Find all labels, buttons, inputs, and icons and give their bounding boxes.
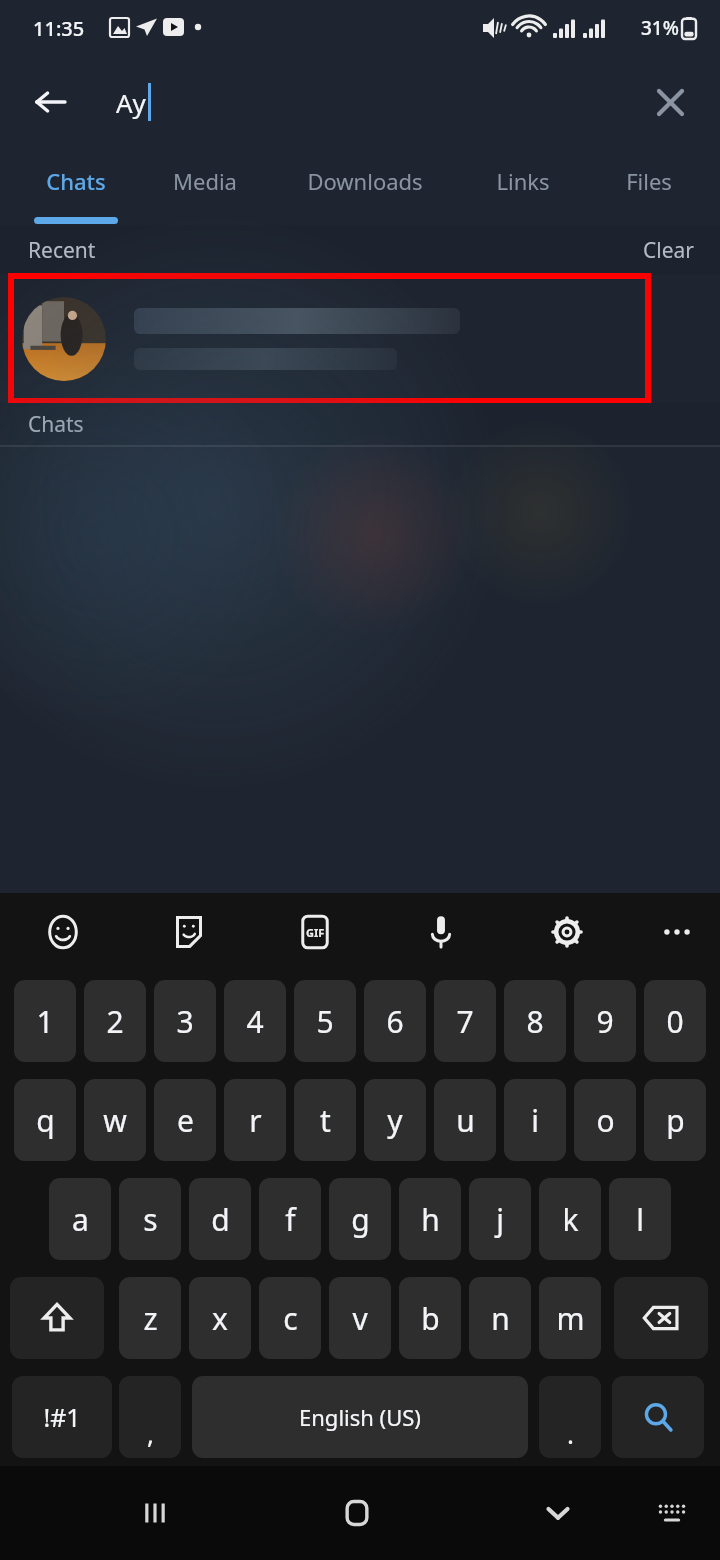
button[interactable]: Hide keyboard [520,1475,596,1551]
button[interactable] [0,275,720,403]
button[interactable]: 3 [154,980,216,1062]
button[interactable]: m [539,1277,601,1359]
staticText: Chats [46,166,106,196]
button[interactable]: z [119,1277,181,1359]
button[interactable]: 1 [14,980,76,1062]
button[interactable]: p [644,1079,706,1161]
button[interactable]: 7 [434,980,496,1062]
staticText: 7 [456,1001,474,1042]
button[interactable]: Settings [533,898,601,966]
button[interactable]: u [434,1079,496,1161]
staticText: b [421,1298,440,1339]
staticText: k [562,1199,579,1240]
button[interactable]: y [364,1079,426,1161]
staticText: Chats [28,410,84,439]
staticText: 1 [36,1001,54,1042]
button[interactable]: Switch keyboard [634,1475,710,1551]
button[interactable]: GIF [281,898,349,966]
staticText: 31% [641,15,679,41]
staticText: Media [173,166,237,196]
staticText: v [352,1298,368,1339]
button[interactable]: Chats [6,148,146,225]
staticText: e [177,1100,194,1141]
staticText: f [285,1199,296,1240]
button[interactable]: Links [453,148,593,225]
button[interactable]: r [224,1079,286,1161]
button[interactable]: Emoji [29,898,97,966]
button[interactable]: Home [319,1475,395,1551]
button[interactable]: 2 [84,980,146,1062]
button[interactable]: n [469,1277,531,1359]
staticText: 2 [106,1001,124,1042]
staticText: d [211,1199,230,1240]
button[interactable]: Back [20,72,80,132]
button[interactable]: 0 [644,980,706,1062]
button[interactable]: . [539,1376,601,1458]
button[interactable]: k [539,1178,601,1260]
button[interactable]: t [294,1079,356,1161]
staticText: r [249,1100,262,1141]
staticText: Recent [28,236,96,265]
button[interactable]: 6 [364,980,426,1062]
staticText: . [567,1416,574,1451]
staticText: y [387,1100,403,1141]
staticText: 5 [316,1001,334,1042]
button[interactable]: f [259,1178,321,1260]
staticText: 11:35 [33,15,85,42]
button[interactable]: g [329,1178,391,1260]
button[interactable]: e [154,1079,216,1161]
staticText: x [212,1298,228,1339]
button[interactable]: j [469,1178,531,1260]
button[interactable]: Backspace [614,1277,708,1359]
staticText: Downloads [307,166,423,196]
button[interactable]: 4 [224,980,286,1062]
staticText: !#1 [43,1400,81,1434]
button[interactable]: 9 [574,980,636,1062]
staticText: Ay [116,85,146,120]
button[interactable]: Files [579,148,719,225]
staticText: 8 [526,1001,544,1042]
staticText: 9 [596,1001,614,1042]
button[interactable]: Downloads [270,148,460,225]
button[interactable]: More options [643,898,711,966]
button[interactable]: Search [612,1376,704,1458]
button[interactable]: Clear [643,236,694,265]
staticText: n [491,1298,510,1339]
button[interactable]: w [84,1079,146,1161]
staticText: 6 [386,1001,404,1042]
button[interactable]: Shift [10,1277,104,1359]
button[interactable]: 5 [294,980,356,1062]
button[interactable]: English (US) [192,1376,528,1458]
staticText: 3 [176,1001,194,1042]
staticText: s [143,1199,158,1240]
button[interactable]: Stickers [155,898,223,966]
staticText: Files [626,166,672,196]
staticText: , [147,1416,154,1451]
button[interactable]: Recents [117,1475,193,1551]
staticText: t [320,1100,331,1141]
button[interactable]: h [399,1178,461,1260]
button[interactable]: s [119,1178,181,1260]
button[interactable]: i [504,1079,566,1161]
staticText: 0 [666,1001,684,1042]
button[interactable]: Clear search [640,72,700,132]
button[interactable]: Media [135,148,275,225]
staticText: a [72,1199,89,1240]
button[interactable]: l [609,1178,671,1260]
button[interactable]: c [259,1277,321,1359]
staticText: u [456,1100,475,1141]
button[interactable]: q [14,1079,76,1161]
button[interactable]: x [189,1277,251,1359]
staticText: j [496,1199,504,1240]
button[interactable]: v [329,1277,391,1359]
button[interactable]: d [189,1178,251,1260]
button[interactable]: , [119,1376,181,1458]
button[interactable]: o [574,1079,636,1161]
staticText: h [421,1199,440,1240]
button[interactable]: 8 [504,980,566,1062]
button[interactable]: !#1 [12,1376,112,1458]
button[interactable]: b [399,1277,461,1359]
button[interactable]: Voice input [407,898,475,966]
button[interactable]: a [49,1178,111,1260]
staticText: g [351,1199,370,1240]
